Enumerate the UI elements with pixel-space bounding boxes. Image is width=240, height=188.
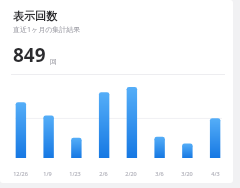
staticText: 回 [50,57,57,66]
staticText: 849 [13,42,46,68]
button[interactable]: 表示回数 [0,0,233,183]
staticText: 3/6 [155,170,164,177]
staticText: 1/23 [69,170,81,177]
staticText: 2/6 [99,170,108,177]
button[interactable]: Display count bar chart for the last mon… [7,75,229,183]
staticText: 3/20 [181,170,193,177]
staticText: 2/20 [125,170,137,177]
staticText: 4/3 [211,170,220,177]
staticText: 表示回数 [13,9,57,23]
staticText: 12/26 [13,170,28,177]
staticText: 直近1ヶ月の集計結果 [13,25,81,35]
staticText: 1/9 [43,170,52,177]
